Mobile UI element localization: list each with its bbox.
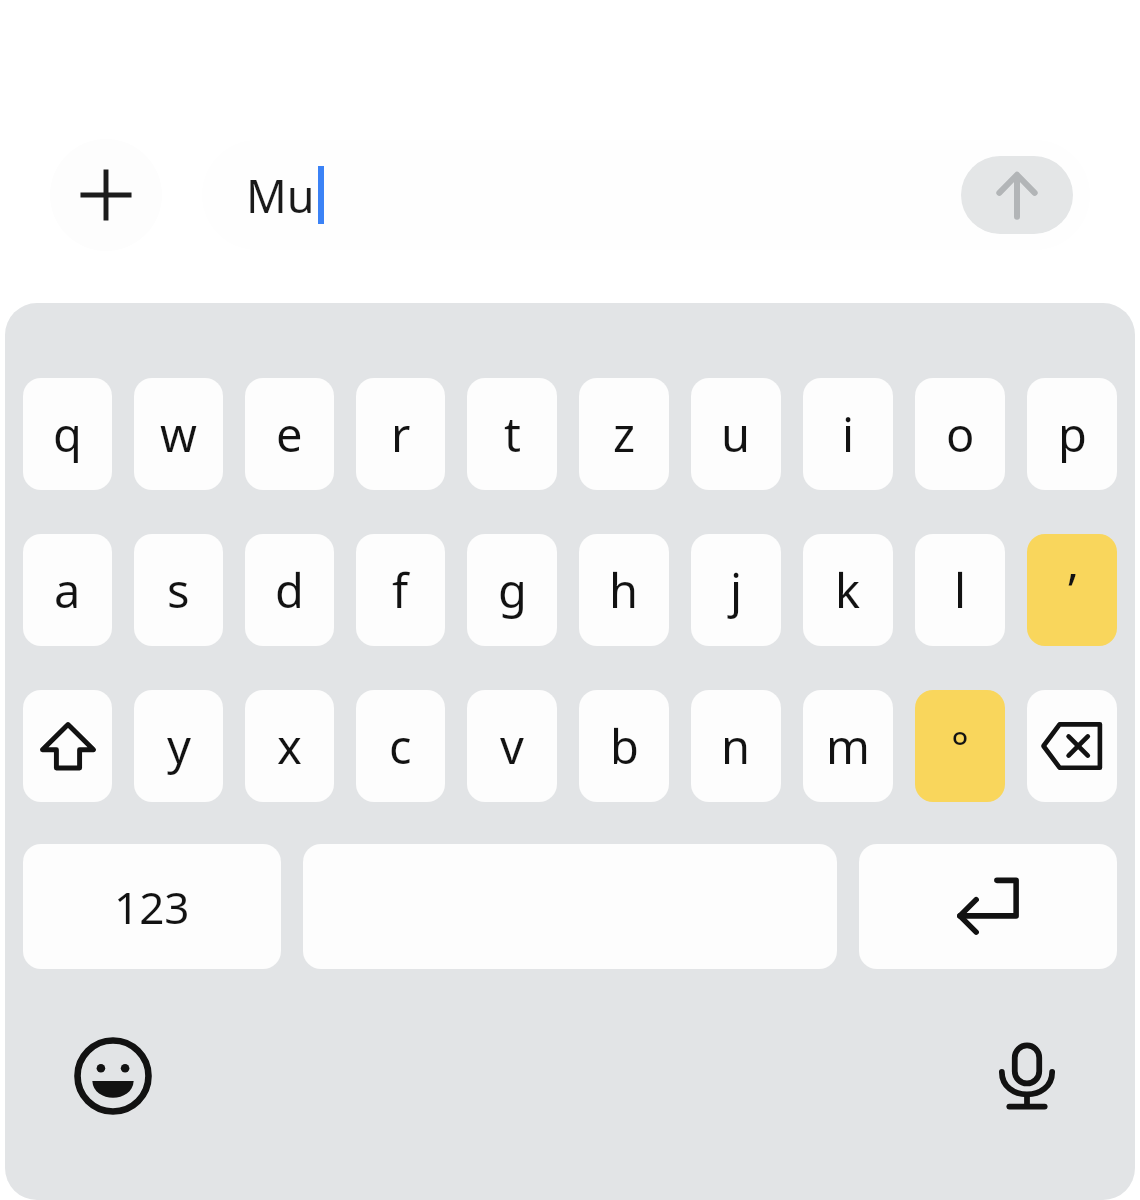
button[interactable]: Emoji (69, 1032, 157, 1120)
button[interactable]: a (23, 534, 112, 646)
staticText: 123 (114, 877, 190, 937)
button[interactable]: Add attachment (50, 139, 162, 251)
button[interactable]: t (467, 378, 557, 490)
button[interactable]: 123 (23, 844, 281, 969)
staticText: b (610, 714, 639, 778)
staticText: ’ (1068, 558, 1077, 622)
staticText: r (391, 402, 411, 466)
button[interactable]: q (23, 378, 112, 490)
staticText: j (730, 558, 743, 622)
button[interactable]: c (356, 690, 445, 802)
staticText: i (842, 402, 855, 466)
staticText: t (504, 402, 521, 466)
staticText: w (160, 402, 197, 466)
button[interactable]: Voice input (983, 1032, 1071, 1120)
staticText: k (835, 558, 861, 622)
staticText: y (167, 714, 191, 778)
button[interactable]: i (803, 378, 893, 490)
button[interactable]: f (356, 534, 445, 646)
staticText: u (721, 402, 751, 466)
button[interactable]: x (245, 690, 334, 802)
button[interactable]: h (579, 534, 669, 646)
button[interactable]: v (467, 690, 557, 802)
staticText: x (277, 714, 302, 778)
staticText: g (498, 558, 527, 622)
button[interactable]: Shift (23, 690, 112, 802)
button[interactable]: e (245, 378, 334, 490)
button[interactable]: u (691, 378, 781, 490)
button[interactable]: s (134, 534, 223, 646)
staticText: d (275, 558, 304, 622)
button[interactable]: Send (961, 156, 1073, 234)
button[interactable]: ’ (1027, 534, 1117, 646)
staticText: e (276, 402, 303, 466)
staticText: f (392, 558, 409, 622)
button[interactable]: r (356, 378, 445, 490)
button[interactable]: ° (915, 690, 1005, 802)
button[interactable]: o (915, 378, 1005, 490)
button[interactable]: g (467, 534, 557, 646)
button[interactable]: j (691, 534, 781, 646)
staticText: q (53, 402, 82, 466)
button[interactable]: Enter (859, 844, 1117, 969)
button[interactable]: b (579, 690, 669, 802)
staticText: v (500, 714, 524, 778)
staticText: s (167, 558, 190, 622)
button[interactable]: n (691, 690, 781, 802)
button[interactable]: z (579, 378, 669, 490)
staticText: n (721, 714, 751, 778)
button[interactable]: Backspace (1027, 690, 1117, 802)
button[interactable]: d (245, 534, 334, 646)
staticText: o (946, 402, 975, 466)
staticText: m (826, 714, 870, 778)
button[interactable]: l (915, 534, 1005, 646)
button[interactable]: y (134, 690, 223, 802)
button[interactable]: k (803, 534, 893, 646)
staticText: c (389, 714, 412, 778)
staticText: h (609, 558, 639, 622)
button[interactable]: p (1027, 378, 1117, 490)
staticText: l (954, 558, 967, 622)
button[interactable]: w (134, 378, 223, 490)
button[interactable]: m (803, 690, 893, 802)
staticText: ° (951, 718, 969, 775)
staticText: a (54, 558, 81, 622)
staticText: p (1058, 402, 1087, 466)
button[interactable]: Mu (202, 140, 1090, 250)
staticText: z (613, 402, 636, 466)
staticText: Mu (246, 165, 315, 226)
